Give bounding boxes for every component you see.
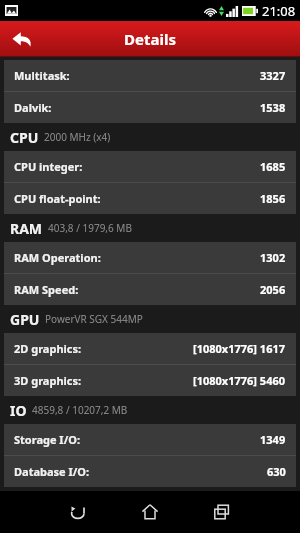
staticText: 21:08 xyxy=(262,2,296,20)
staticText: GPU xyxy=(10,310,40,329)
button[interactable]: Dalvik: xyxy=(4,92,296,123)
staticText: IO xyxy=(10,401,27,420)
staticText: 403,8 / 1979,6 MB xyxy=(48,221,132,235)
staticText: 1685 xyxy=(260,159,286,174)
staticText: RAM Operation: xyxy=(14,250,101,265)
staticText: 1856 xyxy=(260,191,286,206)
staticText: CPU float-point: xyxy=(14,191,101,206)
button[interactable]: Recent apps xyxy=(186,491,258,533)
staticText: 3327 xyxy=(260,68,286,83)
button[interactable]: CPU integer: xyxy=(4,151,296,182)
staticText: Storage I/O: xyxy=(14,432,81,447)
staticText: 3D graphics: xyxy=(14,373,82,388)
staticText: [1080x1776] 1617 xyxy=(193,341,286,356)
staticText: 2000 MHz (x4) xyxy=(44,130,111,144)
staticText: Dalvik: xyxy=(14,100,52,115)
button[interactable]: Back xyxy=(42,491,114,533)
staticText: 2D graphics: xyxy=(14,341,82,356)
staticText: [1080x1776] 5460 xyxy=(193,373,286,388)
button[interactable]: Back xyxy=(0,21,44,57)
button[interactable]: Multitask: xyxy=(4,60,296,91)
staticText: 1349 xyxy=(260,432,286,447)
staticText: CPU integer: xyxy=(14,159,83,174)
staticText: CPU xyxy=(10,128,39,147)
staticText: 1538 xyxy=(260,100,286,115)
staticText: 4859,8 / 10207,2 MB xyxy=(32,403,128,417)
button[interactable]: Database I/O: xyxy=(4,456,296,487)
button[interactable]: 3D graphics: xyxy=(4,365,296,396)
button[interactable]: Storage I/O: xyxy=(4,424,296,455)
staticText: 1302 xyxy=(260,250,286,265)
staticText: 630 xyxy=(267,464,286,479)
button[interactable]: CPU float-point: xyxy=(4,183,296,214)
staticText: Database I/O: xyxy=(14,464,90,479)
staticText: Details xyxy=(124,29,176,49)
staticText: RAM Speed: xyxy=(14,282,79,297)
button[interactable]: RAM Speed: xyxy=(4,274,296,305)
button[interactable]: Home xyxy=(114,491,186,533)
staticText: 2056 xyxy=(260,282,286,297)
staticText: PowerVR SGX 544MP xyxy=(45,312,143,326)
button[interactable]: 2D graphics: xyxy=(4,333,296,364)
staticText: RAM xyxy=(10,219,43,238)
button[interactable]: RAM Operation: xyxy=(4,242,296,273)
staticText: Multitask: xyxy=(14,68,70,83)
